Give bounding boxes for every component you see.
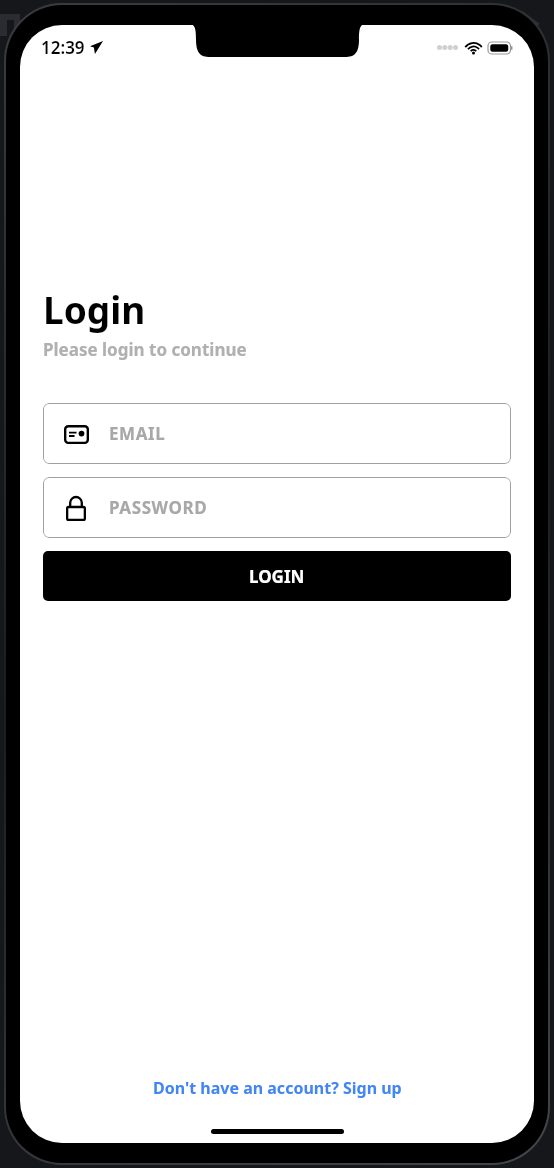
staticText: EMAIL	[109, 422, 166, 445]
button[interactable]: LOGIN	[43, 551, 511, 601]
staticText: 12:39	[41, 36, 85, 59]
staticText: Don't have an account? Sign up	[153, 1077, 402, 1099]
button[interactable]: PASSWORD	[43, 477, 511, 538]
button[interactable]: EMAIL	[43, 403, 511, 464]
staticText: Login	[43, 284, 146, 334]
staticText: LOGIN	[249, 565, 305, 588]
staticText: PASSWORD	[109, 496, 208, 519]
staticText: Please login to continue	[43, 338, 247, 361]
button[interactable]: Don't have an account? Sign up	[141, 1071, 414, 1105]
